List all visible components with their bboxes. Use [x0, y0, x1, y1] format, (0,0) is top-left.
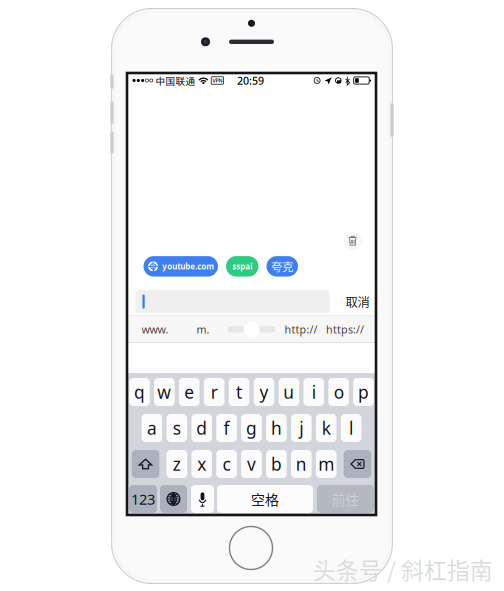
staticText: VPN: [212, 77, 222, 84]
button[interactable]: l: [341, 414, 361, 442]
staticText: u: [283, 380, 294, 403]
staticText: http://: [284, 322, 317, 336]
button[interactable]: i: [303, 378, 324, 406]
button[interactable]: 夸克: [266, 256, 298, 277]
button[interactable]: k: [316, 414, 336, 442]
button[interactable]: u: [279, 378, 299, 406]
staticText: n: [296, 452, 307, 475]
button[interactable]: j: [291, 414, 312, 442]
button[interactable]: https://: [321, 317, 369, 341]
staticText: e: [184, 380, 194, 403]
button[interactable]: d: [191, 414, 212, 442]
button[interactable]: e: [179, 378, 200, 406]
button[interactable]: sspai: [226, 256, 258, 277]
staticText: 中国联通: [155, 73, 195, 87]
button[interactable]: q: [129, 378, 150, 406]
button[interactable]: o: [328, 378, 349, 406]
button[interactable]: v: [241, 450, 262, 478]
staticText: s: [173, 416, 181, 439]
button[interactable]: 取消: [337, 290, 377, 313]
staticText: c: [223, 452, 231, 475]
button[interactable]: s: [166, 414, 187, 442]
staticText: 空格: [251, 489, 279, 509]
button[interactable]: http://: [280, 317, 322, 341]
staticText: sspai: [232, 261, 252, 272]
staticText: www.: [141, 322, 168, 336]
staticText: k: [322, 416, 331, 439]
staticText: 取消: [345, 293, 369, 310]
staticText: https://: [326, 322, 364, 336]
staticText: m.: [196, 322, 209, 336]
staticText: a: [147, 416, 157, 439]
staticText: l: [349, 416, 353, 439]
button[interactable]: 123: [129, 485, 157, 513]
staticText: r: [211, 380, 218, 403]
staticText: v: [247, 452, 256, 475]
button[interactable]: n: [291, 450, 312, 478]
button[interactable]: w: [154, 378, 175, 406]
staticText: 20:59: [237, 73, 264, 88]
staticText: 123: [131, 489, 155, 509]
staticText: 前往: [331, 489, 359, 509]
button[interactable]: m: [316, 450, 336, 478]
staticText: youtube.com: [162, 261, 214, 272]
button[interactable]: b: [266, 450, 287, 478]
staticText: 头条号 / 斜杠指南: [313, 553, 493, 585]
button[interactable]: y: [254, 378, 274, 406]
staticText: 夸克: [271, 258, 293, 274]
button[interactable]: p: [353, 378, 374, 406]
button[interactable]: f: [216, 414, 237, 442]
button[interactable]: www.: [135, 317, 175, 341]
button[interactable]: 前往: [317, 485, 374, 513]
button[interactable]: g: [241, 414, 262, 442]
staticText: g: [246, 416, 257, 439]
button[interactable]: Switch keyboard: [160, 485, 187, 513]
staticText: j: [299, 416, 303, 439]
staticText: x: [197, 452, 206, 475]
staticText: o: [334, 380, 344, 403]
button[interactable]: z: [166, 450, 187, 478]
button[interactable]: c: [216, 450, 237, 478]
button[interactable]: h: [266, 414, 287, 442]
button[interactable]: Dictation: [191, 485, 214, 513]
button[interactable]: m.: [189, 317, 217, 341]
staticText: w: [157, 380, 171, 403]
staticText: p: [358, 380, 369, 403]
button[interactable]: t: [229, 378, 249, 406]
staticText: z: [173, 452, 181, 475]
button[interactable]: a: [142, 414, 162, 442]
staticText: f: [224, 416, 230, 439]
button[interactable]: x: [191, 450, 212, 478]
staticText: t: [236, 380, 242, 403]
staticText: q: [134, 380, 145, 403]
staticText: b: [271, 452, 282, 475]
button[interactable]: youtube.com: [143, 256, 218, 277]
button[interactable]: Delete: [344, 450, 371, 478]
button[interactable]: r: [204, 378, 224, 406]
button[interactable]: 空格: [217, 485, 313, 513]
staticText: m: [318, 452, 334, 475]
staticText: d: [196, 416, 207, 439]
staticText: y: [259, 380, 268, 403]
staticText: i: [312, 380, 316, 403]
staticText: h: [271, 416, 282, 439]
button[interactable]: Shift: [132, 450, 159, 478]
button[interactable]: Clear history: [344, 232, 362, 250]
